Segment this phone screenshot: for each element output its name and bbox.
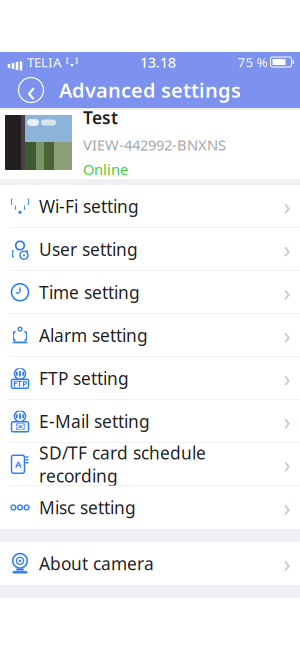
- button[interactable]: A: [0, 443, 300, 486]
- staticText: TELIA: [27, 53, 62, 71]
- staticText: E-Mail setting: [39, 410, 150, 433]
- staticText: FTP setting: [39, 367, 129, 390]
- staticText: VIEW-442992-BNXNS: [83, 135, 226, 154]
- staticText: ›: [283, 320, 290, 350]
- staticText: ‹: [26, 70, 35, 109]
- button[interactable]: Misc setting: [0, 486, 300, 529]
- staticText: A: [15, 458, 21, 470]
- staticText: Advanced settings: [59, 77, 241, 103]
- staticText: Alarm setting: [39, 324, 148, 347]
- staticText: Online: [83, 159, 128, 179]
- staticText: ›: [283, 449, 290, 479]
- staticText: User setting: [39, 238, 138, 261]
- staticText: SD/TF card schedule recording: [39, 441, 206, 487]
- staticText: 75 %: [237, 53, 267, 71]
- staticText: ›: [283, 277, 290, 307]
- button[interactable]: Time setting: [0, 271, 300, 314]
- staticText: 13.18: [140, 52, 176, 72]
- staticText: ✉: [15, 420, 25, 433]
- staticText: Wi-Fi setting: [39, 195, 139, 218]
- staticText: Time setting: [39, 281, 140, 304]
- button[interactable]: Alarm setting: [0, 314, 300, 357]
- button[interactable]: Wi-Fi setting: [0, 185, 300, 228]
- staticText: Misc setting: [39, 496, 136, 519]
- staticText: ›: [283, 406, 290, 436]
- staticText: ›: [283, 548, 290, 578]
- staticText: ›: [283, 234, 290, 264]
- button[interactable]: About camera: [0, 542, 300, 585]
- staticText: ›: [283, 363, 290, 393]
- staticText: ›: [283, 492, 290, 522]
- button[interactable]: ✉: [0, 400, 300, 443]
- staticText: ›: [283, 191, 290, 221]
- button[interactable]: Test: [0, 110, 300, 179]
- staticText: Test: [83, 106, 118, 129]
- button[interactable]: Back: [0, 72, 50, 108]
- staticText: FTP: [13, 378, 27, 389]
- staticText: About camera: [39, 552, 154, 575]
- button[interactable]: FTP: [0, 357, 300, 400]
- button[interactable]: User setting: [0, 228, 300, 271]
